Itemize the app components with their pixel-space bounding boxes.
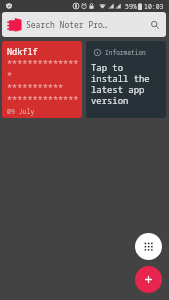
button[interactable]: Ndkflf [2,41,82,118]
staticText: Information [105,48,146,56]
button[interactable]: Apps [135,233,162,260]
button[interactable]: Add note [135,266,162,293]
staticText: * [7,70,13,82]
staticText: 59% [125,2,137,11]
button[interactable]: Information [86,41,166,118]
staticText: *************** [7,58,80,70]
staticText: Ndkflf [7,46,38,58]
button[interactable]: Search Noter Pro… [2,12,166,37]
staticText: *********** [7,82,64,94]
staticText: version [91,94,129,106]
staticText: Search Noter Pro… [26,19,108,30]
other: Search [150,20,160,30]
staticText: 09 July [7,107,35,116]
staticText: install the [91,72,150,84]
staticText: 10:03 [144,2,164,11]
staticText: Tap to [91,61,124,73]
staticText: *************** [7,94,80,106]
staticText: latest app [91,83,145,95]
